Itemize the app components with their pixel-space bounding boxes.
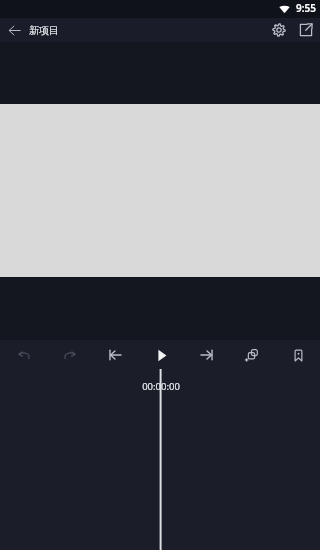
button[interactable]: Play [147,341,175,369]
button[interactable]: Back [2,18,26,42]
staticText: 9:55 [296,1,316,15]
staticText: 新项目 [29,24,59,37]
button[interactable]: Undo [10,341,38,369]
button[interactable]: Duplicate [238,341,266,369]
staticText: 00:00:00 [142,380,180,393]
button[interactable]: Skip to end [193,341,221,369]
button[interactable]: Skip to start [101,341,129,369]
button[interactable]: Export [292,18,319,42]
button[interactable]: Bookmark [284,341,312,369]
button[interactable]: Redo [56,341,84,369]
button[interactable]: Settings [265,18,292,42]
